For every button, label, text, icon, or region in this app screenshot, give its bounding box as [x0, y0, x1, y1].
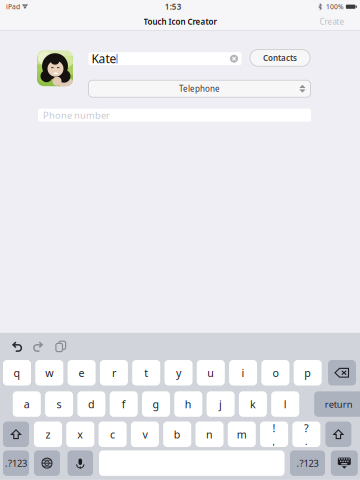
- button[interactable]: v: [131, 421, 159, 447]
- button[interactable]: .?123: [3, 450, 29, 476]
- button[interactable]: Redo: [27, 335, 47, 357]
- staticText: e: [79, 366, 85, 380]
- staticText: k: [250, 397, 256, 411]
- button[interactable]: u: [197, 360, 225, 385]
- button[interactable]: i: [229, 360, 257, 385]
- staticText: .?123: [296, 457, 318, 469]
- staticText: w: [45, 366, 53, 380]
- staticText: v: [142, 427, 147, 441]
- button[interactable]: Contacts: [250, 50, 310, 66]
- staticText: b: [174, 427, 181, 441]
- staticText: p: [304, 366, 311, 380]
- staticText: .: [305, 435, 308, 447]
- button[interactable]: w: [35, 360, 63, 385]
- button[interactable]: !: [260, 421, 288, 447]
- staticText: j: [219, 397, 222, 411]
- button[interactable]: Phone number: [38, 109, 311, 122]
- button[interactable]: Dictation: [67, 450, 93, 476]
- staticText: m: [237, 427, 247, 441]
- staticText: t: [144, 366, 148, 380]
- button[interactable]: [99, 450, 284, 476]
- button[interactable]: g: [142, 391, 170, 417]
- button[interactable]: Hide Keyboard: [331, 450, 358, 476]
- button[interactable]: e: [68, 360, 96, 385]
- staticText: Contacts: [263, 53, 297, 63]
- staticText: 1:53: [165, 1, 182, 12]
- staticText: return: [325, 398, 353, 410]
- staticText: l: [284, 397, 287, 411]
- staticText: Kate: [91, 51, 116, 67]
- staticText: s: [57, 397, 62, 411]
- button[interactable]: Delete: [328, 360, 356, 385]
- button[interactable]: .?123: [290, 450, 325, 476]
- button[interactable]: r: [100, 360, 128, 385]
- staticText: r: [112, 366, 116, 380]
- staticText: Touch Icon Creator: [143, 16, 216, 27]
- button[interactable]: Kate: [88, 52, 241, 65]
- staticText: a: [24, 397, 30, 411]
- staticText: iPad: [6, 2, 20, 11]
- staticText: d: [88, 397, 95, 411]
- button[interactable]: d: [77, 391, 105, 417]
- button[interactable]: x: [66, 421, 94, 447]
- button[interactable]: Shift: [3, 421, 29, 447]
- staticText: i: [242, 366, 245, 380]
- button[interactable]: o: [261, 360, 289, 385]
- button[interactable]: Next keyboard: [34, 450, 60, 476]
- button[interactable]: Shift: [325, 421, 351, 447]
- staticText: Create: [319, 16, 344, 27]
- button[interactable]: n: [195, 421, 223, 447]
- staticText: h: [185, 397, 192, 411]
- staticText: Phone number: [43, 109, 110, 121]
- button[interactable]: j: [207, 391, 235, 417]
- button[interactable]: b: [163, 421, 191, 447]
- staticText: z: [45, 427, 50, 441]
- button[interactable]: c: [99, 421, 127, 447]
- button[interactable]: f: [110, 391, 138, 417]
- staticText: ,: [273, 435, 276, 447]
- staticText: q: [13, 366, 20, 380]
- button[interactable]: k: [239, 391, 267, 417]
- button[interactable]: Paste: [50, 335, 70, 357]
- button[interactable]: p: [294, 360, 322, 385]
- staticText: 100%: [326, 2, 344, 11]
- staticText: ?: [304, 421, 309, 435]
- button[interactable]: a: [13, 391, 41, 417]
- button[interactable]: z: [34, 421, 62, 447]
- staticText: x: [77, 427, 83, 441]
- staticText: f: [122, 397, 126, 411]
- button[interactable]: Telephone: [88, 80, 310, 97]
- button[interactable]: t: [132, 360, 160, 385]
- button[interactable]: Create: [310, 13, 354, 30]
- staticText: !: [273, 421, 276, 435]
- button[interactable]: h: [174, 391, 202, 417]
- staticText: n: [206, 427, 213, 441]
- button[interactable]: return: [314, 391, 360, 417]
- staticText: .?123: [5, 457, 27, 469]
- staticText: y: [176, 366, 181, 380]
- button[interactable]: m: [228, 421, 256, 447]
- button[interactable]: l: [271, 391, 299, 417]
- button[interactable]: s: [45, 391, 73, 417]
- staticText: o: [272, 366, 278, 380]
- button[interactable]: ?: [292, 421, 320, 447]
- staticText: c: [110, 427, 115, 441]
- button[interactable]: y: [164, 360, 192, 385]
- staticText: g: [152, 397, 159, 411]
- button[interactable]: q: [3, 360, 31, 385]
- staticText: u: [207, 366, 214, 380]
- button[interactable]: Undo: [7, 335, 27, 357]
- staticText: Telephone: [179, 83, 220, 94]
